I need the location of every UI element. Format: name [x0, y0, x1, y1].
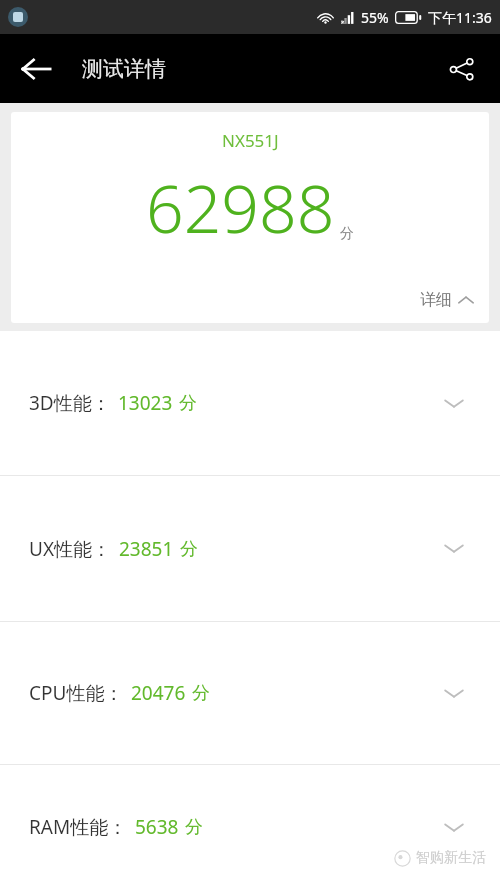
staticText: 55%: [361, 8, 389, 27]
button[interactable]: CPU性能：: [0, 622, 500, 764]
staticText: CPU性能：: [29, 680, 124, 706]
staticText: 13023: [118, 390, 173, 416]
staticText: 分: [185, 816, 203, 839]
button[interactable]: 详细: [420, 290, 474, 310]
staticText: 测试详情: [82, 56, 166, 82]
button[interactable]: Share: [436, 43, 488, 95]
staticText: 62988: [146, 162, 335, 252]
staticText: 分: [179, 392, 197, 415]
staticText: 分: [180, 538, 198, 561]
staticText: NX551J: [222, 129, 279, 152]
staticText: 分: [192, 682, 210, 705]
staticText: 智购新生活: [416, 849, 486, 867]
staticText: RAM性能：: [29, 814, 128, 840]
staticText: 详细: [420, 290, 452, 310]
button[interactable]: 3D性能：: [0, 331, 500, 475]
button[interactable]: Back: [10, 43, 62, 95]
button[interactable]: UX性能：: [0, 476, 500, 621]
staticText: 下午11:36: [428, 8, 492, 27]
staticText: 23851: [119, 536, 174, 562]
staticText: 20476: [131, 680, 186, 706]
staticText: 5638: [135, 814, 179, 840]
staticText: 3D性能：: [29, 390, 111, 416]
staticText: 分: [340, 225, 354, 243]
button[interactable]: NX551J: [11, 112, 489, 323]
staticText: UX性能：: [29, 536, 112, 562]
button[interactable]: RAM性能：: [0, 765, 500, 889]
